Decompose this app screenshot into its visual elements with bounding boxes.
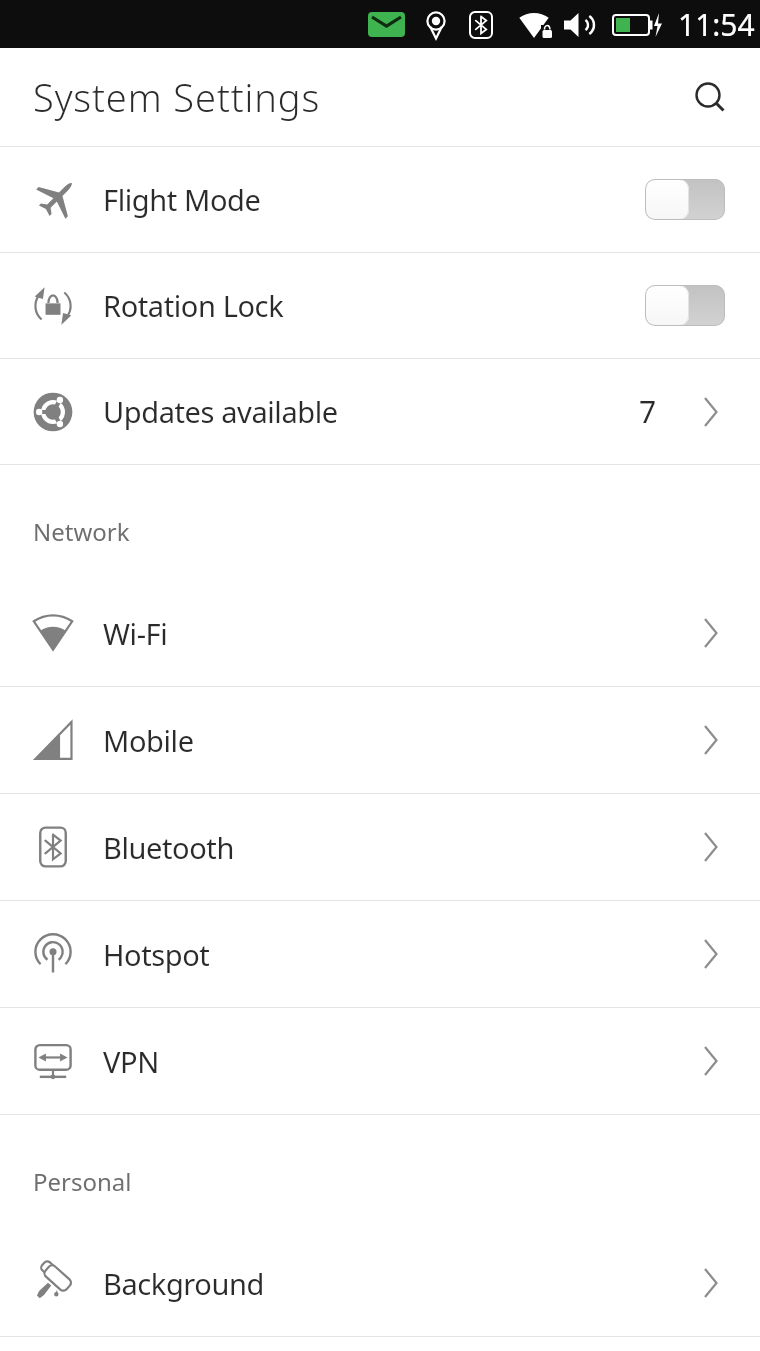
staticText: System Settings: [33, 71, 321, 123]
staticText: 11:54: [678, 4, 755, 45]
button[interactable]: Mobile: [0, 687, 760, 793]
button[interactable]: Bluetooth: [0, 794, 760, 900]
staticText: Personal: [33, 1165, 132, 1198]
button[interactable]: Flight Mode: [0, 147, 760, 252]
staticText: Wi-Fi: [103, 614, 168, 653]
button[interactable]: [645, 179, 725, 220]
staticText: VPN: [103, 1042, 159, 1081]
button[interactable]: Background: [0, 1230, 760, 1336]
button[interactable]: [645, 285, 725, 326]
staticText: Rotation Lock: [103, 286, 284, 325]
button[interactable]: Updates available: [0, 359, 760, 464]
button[interactable]: VPN: [0, 1008, 760, 1114]
staticText: Background: [103, 1264, 264, 1303]
staticText: Hotspot: [103, 935, 210, 974]
staticText: 7: [639, 391, 657, 432]
button[interactable]: Wi-Fi: [0, 580, 760, 686]
staticText: Updates available: [103, 392, 338, 431]
staticText: Network: [33, 515, 130, 548]
staticText: Bluetooth: [103, 828, 234, 867]
button[interactable]: Hotspot: [0, 901, 760, 1007]
staticText: Mobile: [103, 721, 194, 760]
button[interactable]: Rotation Lock: [0, 253, 760, 358]
staticText: Flight Mode: [103, 180, 261, 219]
button[interactable]: [692, 80, 726, 114]
